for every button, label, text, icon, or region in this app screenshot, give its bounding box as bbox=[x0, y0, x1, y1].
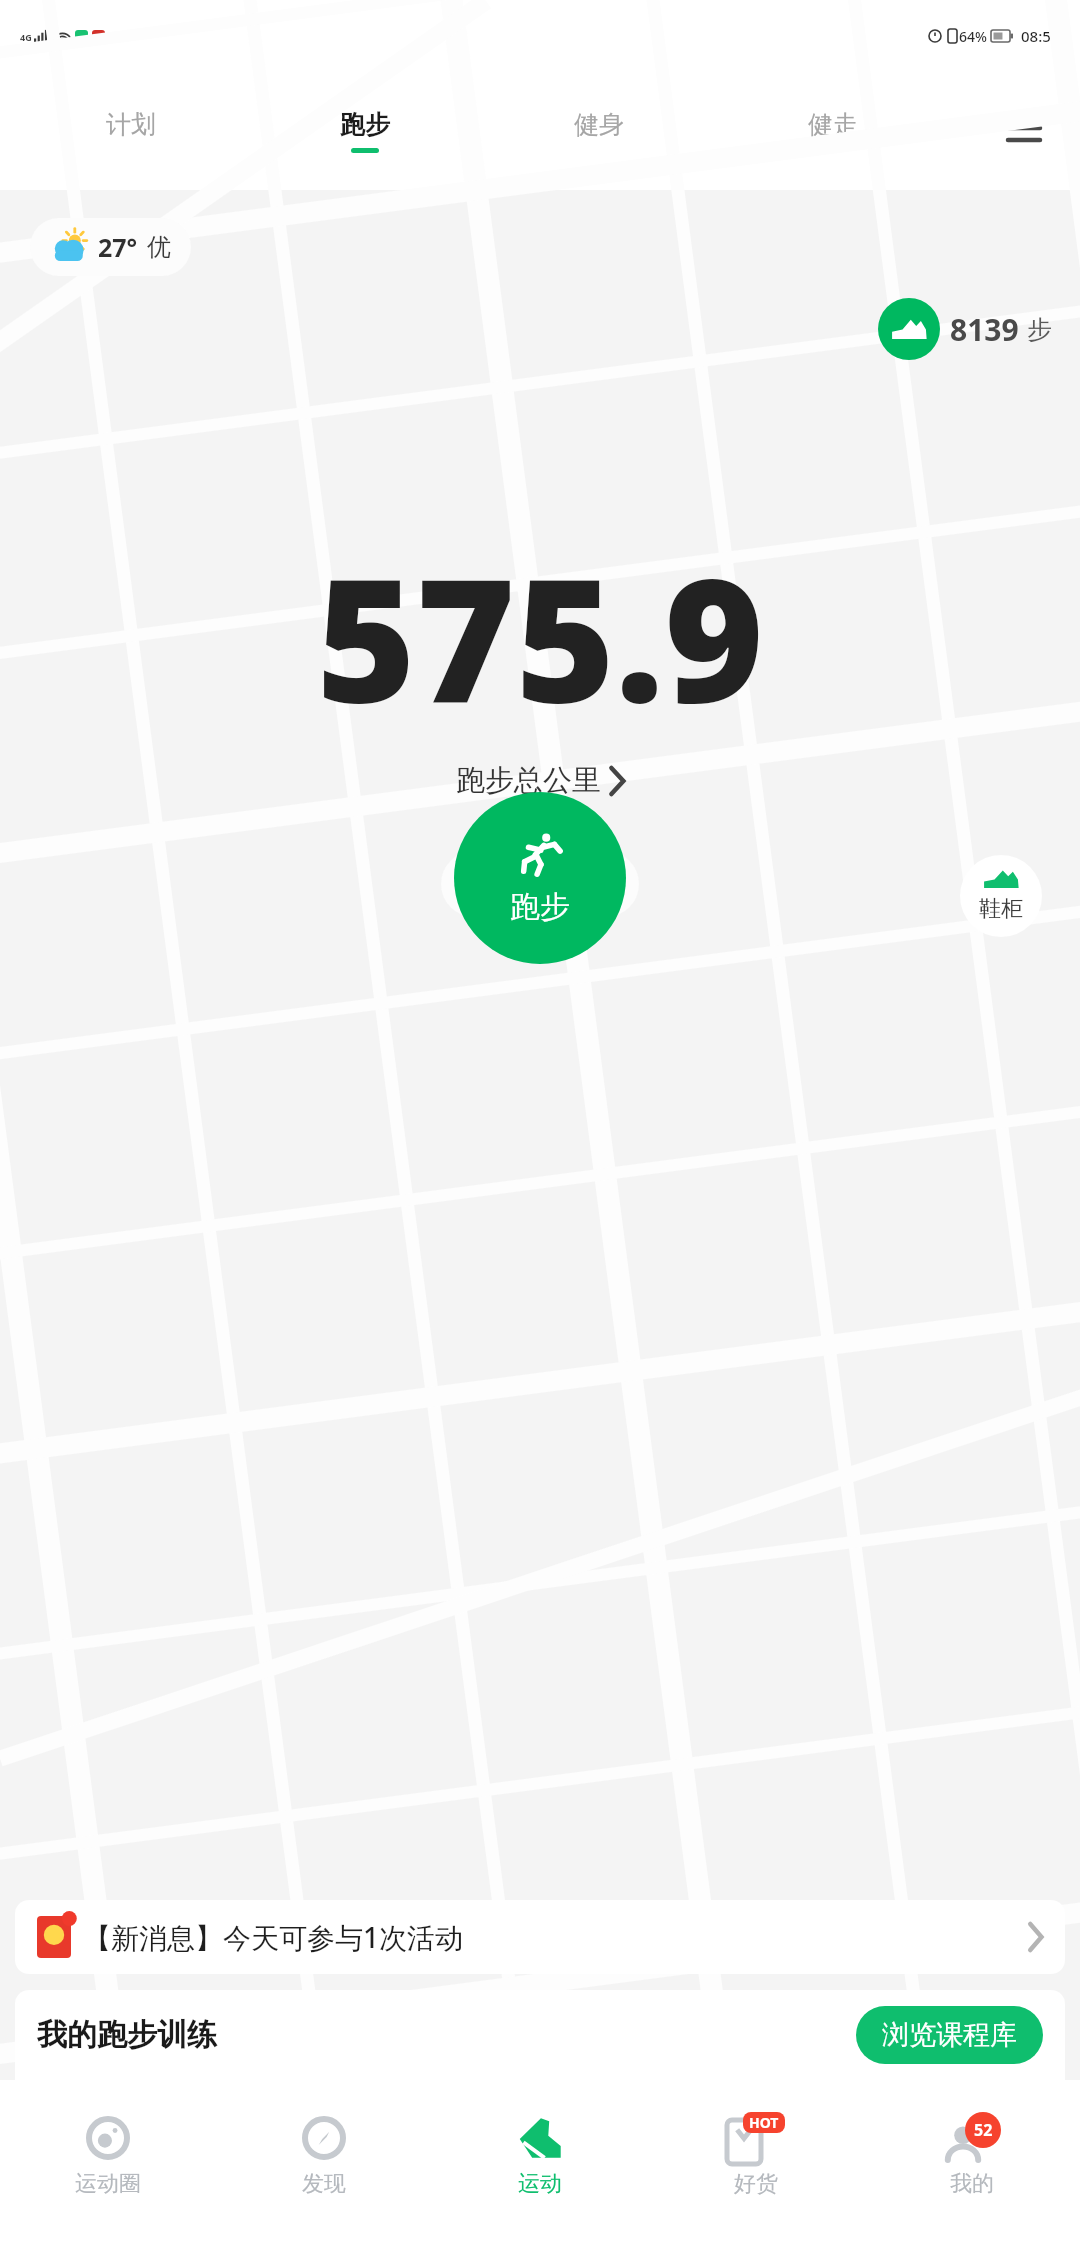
staticText: 27° bbox=[98, 230, 138, 264]
staticText: 健走 bbox=[808, 109, 858, 140]
staticText: 64% bbox=[959, 27, 987, 46]
staticText: 计划 bbox=[106, 109, 156, 140]
staticText: 鞋柜 bbox=[979, 895, 1023, 923]
staticText: 4G bbox=[20, 31, 32, 43]
button[interactable]: 跑步 bbox=[454, 792, 626, 964]
button[interactable]: 鞋柜 bbox=[960, 855, 1042, 937]
staticText: 运动 bbox=[518, 2170, 562, 2198]
staticText: 跑步 bbox=[340, 109, 390, 140]
button[interactable]: 计划 bbox=[14, 72, 248, 190]
button[interactable]: HOT bbox=[648, 2080, 864, 2244]
button[interactable]: 【新消息】今天可参与1次活动 bbox=[15, 1900, 1065, 1974]
staticText: 52 bbox=[974, 2119, 993, 2141]
button[interactable]: 跑步 bbox=[248, 72, 482, 190]
staticText: 健身 bbox=[574, 109, 624, 140]
button[interactable]: 27° bbox=[30, 218, 191, 276]
staticText: HOT bbox=[749, 2113, 779, 2132]
staticText: 浏览课程库 bbox=[882, 2018, 1017, 2052]
staticText: 优 bbox=[147, 232, 171, 262]
button[interactable]: 运动 bbox=[432, 2080, 648, 2244]
button[interactable]: 8139 bbox=[878, 298, 1052, 360]
staticText: 我的 bbox=[950, 2170, 994, 2198]
button[interactable]: Menu bbox=[996, 100, 1052, 156]
staticText: 步 bbox=[1027, 314, 1052, 345]
button[interactable]: 健走 bbox=[716, 72, 950, 190]
button[interactable]: 跑步总公里 bbox=[456, 762, 625, 799]
staticText: 跑步 bbox=[510, 888, 570, 926]
staticText: 08:59 bbox=[1021, 26, 1060, 46]
staticText: 运动圈 bbox=[75, 2170, 141, 2198]
staticText: 8139 bbox=[950, 309, 1019, 350]
button[interactable]: 发现 bbox=[216, 2080, 432, 2244]
button[interactable]: 智能装备 bbox=[441, 851, 639, 917]
staticText: 智能装备 bbox=[469, 867, 577, 901]
staticText: 好货 bbox=[734, 2170, 778, 2198]
button[interactable]: 52 bbox=[864, 2080, 1080, 2244]
staticText: 【新消息】今天可参与1次活动 bbox=[83, 1918, 464, 1956]
staticText: 跑步总公里 bbox=[456, 762, 601, 799]
staticText: 575.9 bbox=[316, 520, 764, 752]
button[interactable]: 浏览课程库 bbox=[856, 2006, 1043, 2064]
button[interactable]: 健身 bbox=[482, 72, 716, 190]
staticText: 发现 bbox=[302, 2170, 346, 2198]
button[interactable]: 运动圈 bbox=[0, 2080, 216, 2244]
staticText: 我的跑步训练 bbox=[37, 2016, 217, 2054]
